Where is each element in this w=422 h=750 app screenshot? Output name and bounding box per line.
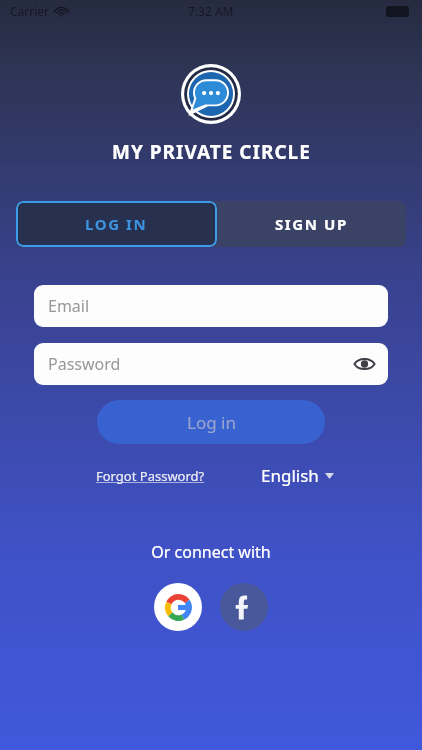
button[interactable]: Email bbox=[34, 285, 388, 327]
button[interactable]: Log in bbox=[97, 400, 325, 444]
staticText: Email bbox=[48, 295, 90, 317]
staticText: Password bbox=[48, 353, 121, 375]
button[interactable]: Sign in with Google bbox=[154, 583, 202, 631]
staticText: Or connect with bbox=[151, 541, 271, 563]
button[interactable]: Show password bbox=[352, 352, 376, 376]
staticText: MY PRIVATE CIRCLE bbox=[112, 139, 311, 165]
button[interactable]: English bbox=[261, 460, 334, 491]
staticText: English bbox=[261, 464, 319, 487]
staticText: SIGN UP bbox=[275, 214, 348, 234]
button[interactable]: LOG IN bbox=[16, 201, 217, 247]
staticText: LOG IN bbox=[85, 214, 148, 234]
staticText: 7:32 AM bbox=[188, 3, 234, 19]
button[interactable]: SIGN UP bbox=[217, 201, 406, 247]
staticText: Log in bbox=[187, 411, 236, 434]
button[interactable]: Sign in with Facebook bbox=[220, 583, 268, 631]
staticText: Carrier bbox=[10, 3, 50, 19]
button[interactable]: Password bbox=[34, 343, 388, 385]
button[interactable]: Forgot Password? bbox=[96, 463, 205, 489]
staticText: Forgot Password? bbox=[96, 467, 205, 485]
